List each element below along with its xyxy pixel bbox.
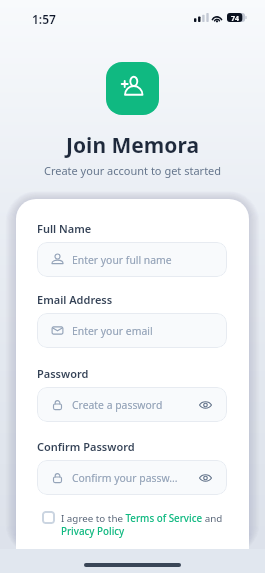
staticText: 1:57: [32, 11, 56, 27]
button[interactable]: Enter your email: [37, 313, 227, 348]
button[interactable]: Confirm your passw...: [37, 460, 227, 495]
button[interactable]: I agree to the Terms of Service and Priv…: [36, 512, 226, 538]
staticText: Confirm Password: [37, 439, 135, 454]
staticText: Create a password: [72, 398, 198, 412]
staticText: Confirm your passw...: [72, 471, 198, 485]
staticText: Full Name: [37, 221, 92, 236]
staticText: I agree to the Terms of Service and Priv…: [61, 512, 225, 538]
button[interactable]: Show password: [198, 397, 212, 413]
staticText: Enter your full name: [72, 253, 212, 267]
staticText: Join Memora: [0, 131, 265, 160]
staticText: Email Address: [37, 292, 113, 307]
staticText: Enter your email: [72, 324, 212, 338]
button[interactable]: Enter your full name: [37, 242, 227, 277]
staticText: Password: [37, 366, 89, 381]
staticText: Create your account to get started: [0, 163, 265, 178]
button[interactable]: Create a password: [37, 387, 227, 422]
button[interactable]: Show password: [198, 470, 212, 486]
staticText: 74: [231, 14, 240, 24]
